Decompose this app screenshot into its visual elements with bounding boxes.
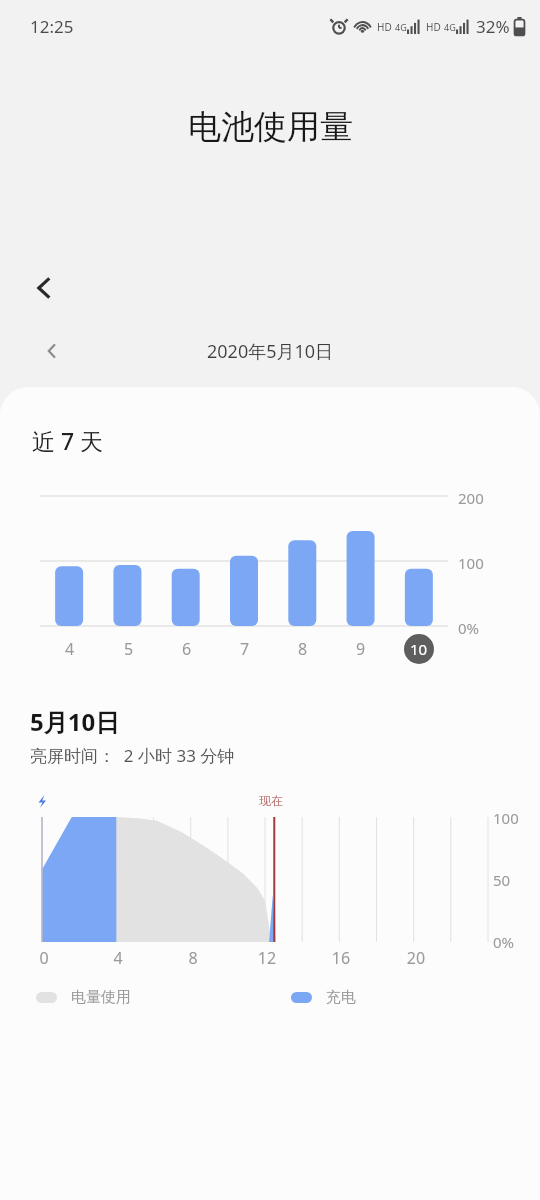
staticText: 10 [410, 639, 428, 659]
staticText: 电池使用量 [188, 106, 353, 148]
staticText: 近 7 天 [32, 425, 104, 456]
button[interactable]: Previous day [26, 325, 78, 377]
staticText: 4G [395, 21, 407, 33]
staticText: 充电 [326, 988, 356, 1007]
staticText: 100 [458, 553, 484, 573]
staticText: HD [426, 20, 441, 34]
staticText: 16 [331, 947, 351, 969]
staticText: 亮屏时间： 2 小时 33 分钟 [30, 744, 235, 767]
staticText: 12 [257, 947, 277, 969]
staticText: 8 [183, 947, 203, 969]
staticText: 6 [182, 638, 192, 660]
button[interactable]: Back [8, 252, 80, 324]
staticText: 现在 [259, 793, 283, 808]
staticText: 50 [493, 870, 511, 890]
staticText: 4 [65, 638, 75, 660]
staticText: 0 [34, 947, 54, 969]
staticText: 20 [406, 947, 426, 969]
staticText: 5月10日 [30, 705, 120, 738]
staticText: HD [377, 20, 392, 34]
staticText: 0% [493, 932, 515, 952]
staticText: 7 [240, 638, 250, 660]
staticText: 100 [493, 808, 519, 828]
staticText: 200 [458, 488, 484, 508]
staticText: 2020年5月10日 [207, 339, 334, 364]
staticText: 4G [444, 21, 456, 33]
staticText: 12:25 [30, 15, 74, 38]
staticText: 32% [476, 15, 510, 38]
staticText: 9 [356, 638, 366, 660]
staticText: 电量使用 [71, 988, 131, 1007]
staticText: 8 [298, 638, 308, 660]
staticText: 0% [458, 618, 480, 638]
staticText: 4 [108, 947, 128, 969]
staticText: 5 [124, 638, 134, 660]
